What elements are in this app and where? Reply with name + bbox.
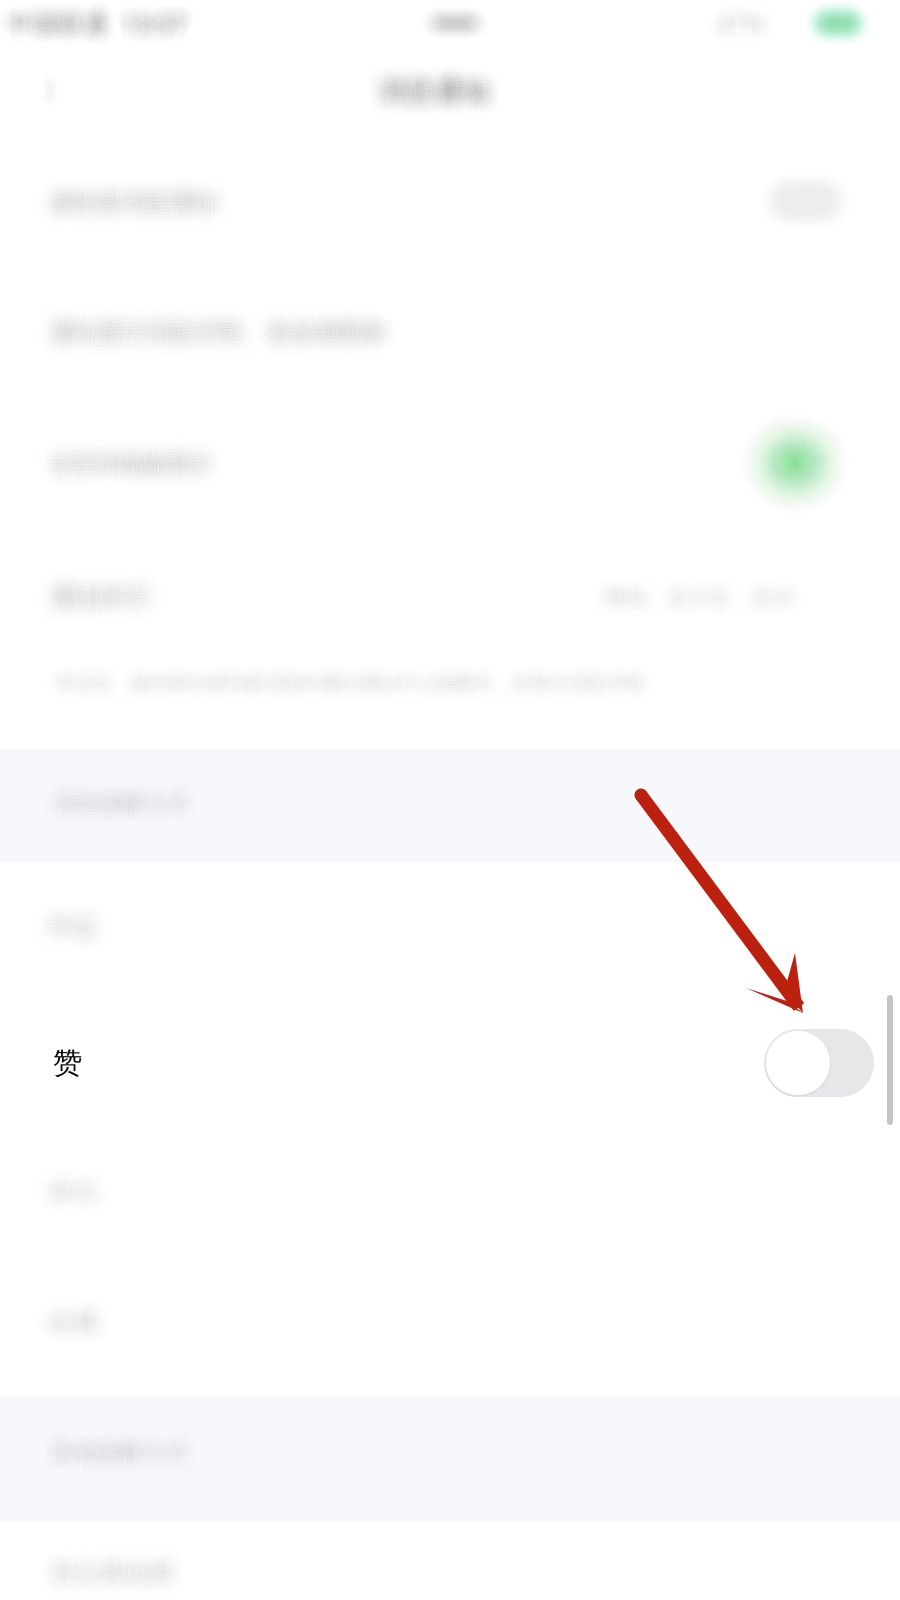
staticText: 横幅、提示音、振动 xyxy=(609,579,798,605)
staticText: 47% xyxy=(723,0,772,32)
staticText: 评论 xyxy=(42,1186,92,1218)
staticText: 47% xyxy=(722,15,771,49)
staticText: 朋友圈提醒 xyxy=(61,1554,186,1585)
staticText: 消息提醒方式 xyxy=(50,785,188,813)
staticText: 通知显示消息详情、发送者昵称 xyxy=(57,325,393,355)
staticText: 横幅、提示音、振动 xyxy=(594,592,783,618)
staticText: 通知显示消息详情、发送者昵称 xyxy=(59,322,395,351)
staticText: 中国联通 13:57 xyxy=(11,0,188,32)
staticText: 通知显示消息详情、发送者昵称 xyxy=(55,312,391,341)
staticText: 声音 xyxy=(46,908,96,939)
staticText: 消息提醒方式 xyxy=(41,782,179,810)
staticText: 收藏 xyxy=(51,1320,101,1351)
staticText: 47% xyxy=(728,4,777,38)
staticText: 横幅、提示音、振动 xyxy=(608,591,797,617)
staticText: 横幅、提示音、振动 xyxy=(596,578,785,604)
staticText: 接收新消息通知 xyxy=(60,195,228,224)
staticText: 朋友圈提醒 xyxy=(50,1565,175,1596)
staticText: 横幅、提示音、振动 xyxy=(598,575,787,601)
staticText: 朋友圈提醒 xyxy=(46,1570,171,1600)
staticText: 语音和视频通话 xyxy=(39,445,200,473)
staticText: 评论 xyxy=(59,1170,109,1201)
staticText: 中国联通 13:57 xyxy=(9,0,186,30)
staticText: 47% xyxy=(719,12,768,46)
staticText: 声音 xyxy=(49,912,99,943)
staticText: 其他提醒方式 xyxy=(58,1429,196,1457)
staticText: 47% xyxy=(725,3,774,37)
staticText: 横幅、提示音、振动 xyxy=(602,585,791,611)
staticText: 消息提醒方式 xyxy=(45,784,183,811)
staticText: 横幅、提示音、振动 xyxy=(598,572,787,598)
staticText: 语音和视频通话 xyxy=(63,456,224,483)
staticText: 通知显示消息详情、发送者昵称 xyxy=(46,323,382,352)
staticText: 横幅、提示音、振动 xyxy=(604,581,793,607)
staticText: 声音 xyxy=(53,904,103,936)
staticText: 声音 xyxy=(39,923,89,954)
staticText: 横幅、提示音、振动 xyxy=(594,583,783,609)
staticText: 横幅、提示音、振动 xyxy=(594,579,783,605)
staticText: 语音和视频通话 xyxy=(56,455,217,483)
staticText: 评论 xyxy=(47,1181,97,1212)
staticText: 朋友圈提醒 xyxy=(44,1567,169,1599)
staticText: 消息提醒方式 xyxy=(43,796,181,824)
staticText: 横幅、提示音、振动 xyxy=(616,589,805,615)
staticText: 开启后，微信将在收到新消息时通过通知中心提醒你，并显示消息详情 xyxy=(59,667,648,690)
staticText: 声音 xyxy=(54,911,104,942)
staticText: 声音 xyxy=(56,913,106,945)
staticText: 其他提醒方式 xyxy=(61,1435,199,1463)
staticText: 收藏 xyxy=(56,1311,106,1342)
staticText: 其他提醒方式 xyxy=(57,1437,195,1465)
staticText: 通知样式 xyxy=(50,571,150,602)
staticText: 通知样式 xyxy=(44,572,144,603)
button[interactable]: 赞 xyxy=(0,999,900,1127)
staticText: 通知样式 xyxy=(55,583,155,614)
staticText: 语音和视频通话 xyxy=(52,456,213,484)
staticText: 消息通知 xyxy=(368,69,480,104)
staticText: 声音 xyxy=(52,920,102,951)
staticText: 横幅、提示音、振动 xyxy=(610,583,799,609)
staticText: 通知显示消息详情、发送者昵称 xyxy=(49,322,385,351)
staticText: 中国联通 13:57 xyxy=(11,14,188,48)
staticText: 评论 xyxy=(50,1171,100,1203)
staticText: 收藏 xyxy=(39,1317,89,1348)
staticText: 中国联通 13:57 xyxy=(12,0,189,34)
staticText: 评论 xyxy=(39,1179,89,1210)
staticText: 朋友圈提醒 xyxy=(64,1555,189,1586)
staticText: 消息通知 xyxy=(376,83,488,118)
staticText: 横幅、提示音、振动 xyxy=(612,580,801,606)
staticText: 声音 xyxy=(40,906,90,938)
staticText: 横幅、提示音、振动 xyxy=(615,577,804,604)
staticText: 横幅、提示音、振动 xyxy=(606,576,795,602)
staticText: 声音 xyxy=(41,917,91,948)
staticText: 评论 xyxy=(45,1168,95,1199)
staticText: 通知样式 xyxy=(49,574,149,605)
staticText: 横幅、提示音、振动 xyxy=(601,572,790,599)
staticText: 中国联通 13:57 xyxy=(9,0,186,34)
staticText: 47% xyxy=(709,16,758,49)
staticText: 消息提醒方式 xyxy=(40,793,178,821)
staticText: 通知显示消息详情、发送者昵称 xyxy=(39,316,375,346)
staticText: 开启后，微信将在收到新消息时通过通知中心提醒你，并显示消息详情 xyxy=(59,680,648,703)
staticText: 语音和视频通话 xyxy=(38,442,199,470)
staticText: 横幅、提示音、振动 xyxy=(605,584,794,610)
staticText: 消息通知 xyxy=(373,63,485,97)
staticText: 消息通知 xyxy=(371,68,483,103)
staticText: 收藏 xyxy=(56,1303,106,1334)
staticText: 收藏 xyxy=(41,1314,91,1345)
staticText: 横幅、提示音、振动 xyxy=(595,595,784,621)
staticText: 其他提醒方式 xyxy=(41,1433,179,1461)
staticText: 横幅、提示音、振动 xyxy=(592,576,781,603)
staticText: 其他提醒方式 xyxy=(62,1443,200,1471)
staticText: 消息通知 xyxy=(384,81,496,115)
staticText: 消息通知 xyxy=(388,76,500,111)
staticText: 其他提醒方式 xyxy=(50,1432,188,1460)
staticText: 接收新消息通知 xyxy=(48,198,216,228)
staticText: 消息提醒方式 xyxy=(52,800,190,828)
staticText: 评论 xyxy=(56,1173,106,1204)
staticText: 接收新消息通知 xyxy=(52,174,220,203)
staticText: 评论 xyxy=(51,1174,101,1205)
staticText: 开启后，微信将在收到新消息时通过通知中心提醒你，并显示消息详情 xyxy=(50,664,639,687)
staticText: 47% xyxy=(725,9,774,42)
staticText: 收藏 xyxy=(36,1299,86,1330)
staticText: 47% xyxy=(707,2,756,36)
